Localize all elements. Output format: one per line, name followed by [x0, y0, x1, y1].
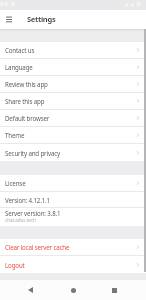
button[interactable]: Version: 4.12.1.1: [0, 192, 146, 208]
button[interactable]: Contact us: [0, 42, 146, 59]
staticText: Contact us: [5, 46, 35, 54]
staticText: Clear local server cache: [5, 243, 70, 251]
button[interactable]: Default browser: [0, 110, 146, 127]
staticText: Server version: 3.8.1: [5, 209, 61, 217]
button[interactable]: Logout: [0, 256, 146, 273]
button[interactable]: Recent apps: [101, 280, 128, 300]
staticText: Version: 4.12.1.1: [5, 196, 50, 204]
button[interactable]: Theme: [0, 127, 146, 144]
button[interactable]: Open navigation menu: [3, 13, 16, 26]
button[interactable]: Clear local server cache: [0, 239, 146, 256]
staticText: Language: [5, 63, 33, 71]
button[interactable]: Home: [60, 280, 87, 300]
staticText: Review this app: [5, 80, 48, 88]
staticText: Security and privacy: [5, 149, 61, 157]
staticText: Share this app: [5, 97, 45, 105]
button[interactable]: Share this app: [0, 93, 146, 110]
button[interactable]: Back: [17, 280, 44, 300]
staticText: Default browser: [5, 114, 50, 122]
staticText: Theme: [5, 131, 25, 139]
button[interactable]: Security and privacy: [0, 144, 146, 161]
button[interactable]: Server version: 3.8.1: [0, 208, 146, 226]
staticText: chat.adus.tech: [5, 217, 36, 223]
button[interactable]: Review this app: [0, 76, 146, 93]
button[interactable]: Language: [0, 59, 146, 76]
button[interactable]: License: [0, 175, 146, 192]
staticText: Settings: [27, 14, 56, 24]
staticText: License: [5, 179, 26, 187]
staticText: Logout: [5, 261, 25, 269]
